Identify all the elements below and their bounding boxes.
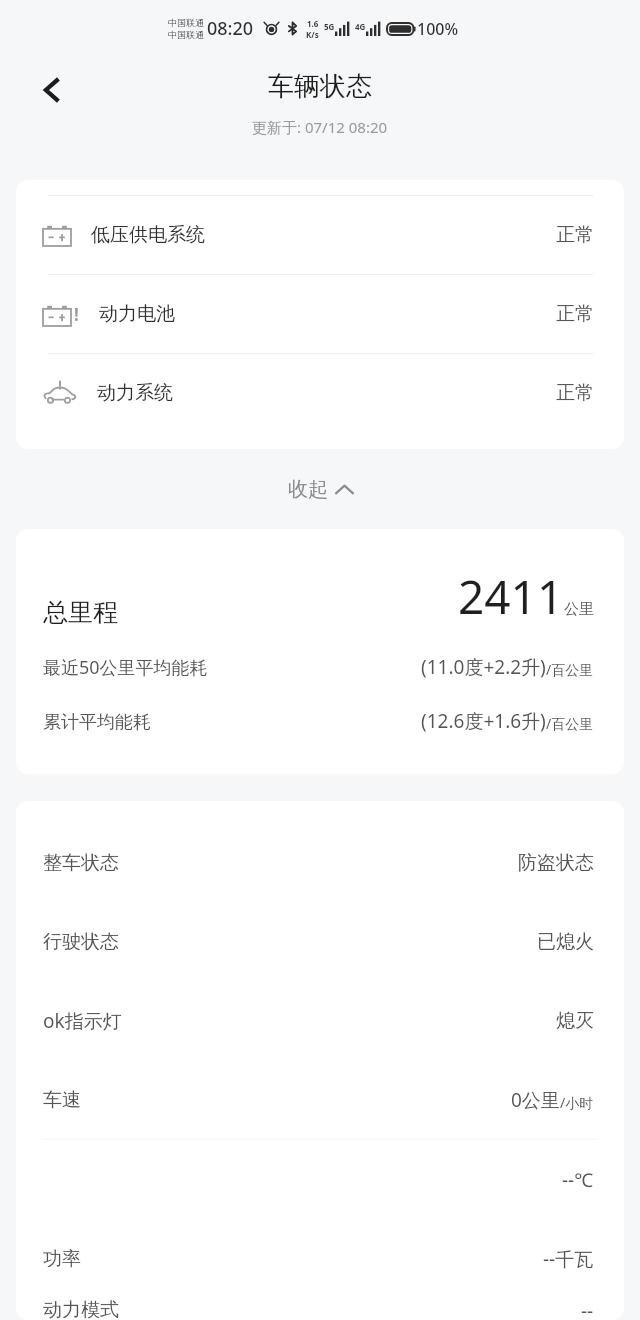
button[interactable]: 整车状态 <box>16 823 624 902</box>
button[interactable]: 车速 <box>16 1060 624 1139</box>
staticText: 总里程 <box>43 597 118 628</box>
staticText: 中国联通 <box>168 29 204 40</box>
staticText: ok指示灯 <box>43 1008 122 1034</box>
button[interactable]: 行驶状态 <box>16 902 624 981</box>
staticText: 动力电池 <box>99 302 175 326</box>
button[interactable]: ok指示灯 <box>16 981 624 1060</box>
staticText: 已熄火 <box>537 930 594 954</box>
staticText: 防盗状态 <box>518 851 594 875</box>
staticText: --千瓦 <box>543 1246 594 1272</box>
button[interactable]: 低压供电系统 <box>16 196 624 274</box>
staticText: 正常 <box>556 302 594 326</box>
staticText: K/s <box>306 29 319 40</box>
staticText: 4G <box>355 21 366 32</box>
staticText: 动力模式 <box>43 1298 119 1320</box>
staticText: -- <box>581 1298 594 1320</box>
staticText: 2411 <box>458 565 564 628</box>
button[interactable]: ! <box>16 275 624 353</box>
staticText: 正常 <box>556 223 594 247</box>
staticText: 正常 <box>556 381 594 405</box>
button[interactable]: --℃ <box>16 1140 624 1219</box>
staticText: (11.0度+2.2升) <box>421 654 546 680</box>
staticText: 车辆状态 <box>268 70 372 103</box>
staticText: 整车状态 <box>43 851 119 875</box>
staticText: 行驶状态 <box>43 930 119 954</box>
staticText: /百公里 <box>546 714 594 733</box>
staticText: 累计平均能耗 <box>43 711 151 734</box>
button[interactable]: 动力模式 <box>16 1298 624 1320</box>
button[interactable]: 收起 <box>0 449 640 529</box>
staticText: 动力系统 <box>97 381 173 405</box>
staticText: 低压供电系统 <box>91 223 205 247</box>
staticText: (12.6度+1.6升) <box>421 708 546 734</box>
staticText: --℃ <box>562 1167 594 1193</box>
staticText: 0公里 <box>511 1087 560 1113</box>
staticText: 功率 <box>43 1247 81 1271</box>
staticText: /百公里 <box>546 660 594 679</box>
staticText: 公里 <box>564 600 594 619</box>
staticText: 中国联通 <box>168 17 204 28</box>
staticText: ! <box>74 303 79 326</box>
staticText: 5G <box>324 21 335 32</box>
button[interactable]: 动力系统 <box>16 354 624 432</box>
staticText: 车速 <box>43 1088 81 1112</box>
staticText: 1.6 <box>307 18 319 29</box>
staticText: 收起 <box>288 477 328 502</box>
button[interactable]: Back <box>24 62 80 118</box>
staticText: /小时 <box>560 1093 594 1112</box>
button[interactable]: 功率 <box>16 1219 624 1298</box>
staticText: 最近50公里平均能耗 <box>43 655 208 680</box>
staticText: 100% <box>417 18 459 40</box>
staticText: 熄灭 <box>556 1009 594 1033</box>
staticText: 08:20 <box>207 16 254 41</box>
staticText: 更新于: 07/12 08:20 <box>252 117 388 137</box>
